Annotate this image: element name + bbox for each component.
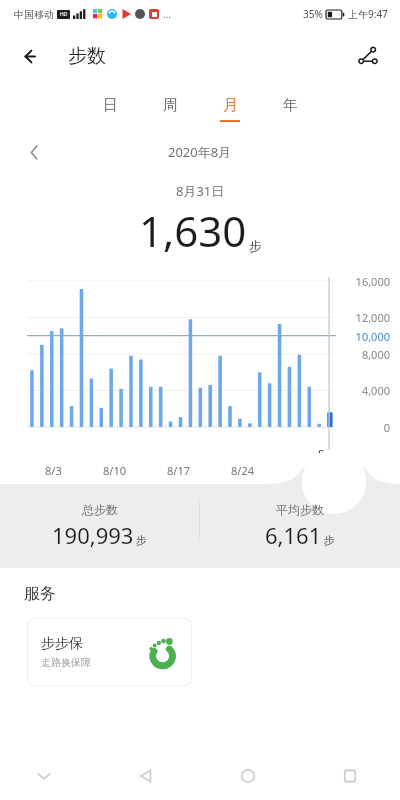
staticText: 步 [249, 238, 262, 254]
staticText: 走路换保障 [41, 656, 91, 669]
staticText: 服务 [24, 584, 56, 604]
staticText: 10,000 [0, 329, 390, 344]
button[interactable]: 总步数 [0, 502, 199, 550]
staticText: 日 [103, 96, 118, 115]
button[interactable]: 步步保 [27, 618, 192, 686]
staticText: 190,993 [52, 520, 134, 550]
staticText: 步数 [68, 44, 106, 68]
staticText: 月 [223, 96, 238, 115]
staticText: 步步保 [41, 635, 83, 653]
button[interactable]: 日 [96, 92, 124, 126]
staticText: 8/10 [103, 463, 126, 478]
staticText: 步 [136, 533, 147, 547]
staticText: 6,161 [265, 520, 322, 550]
staticText: 4,000 [0, 383, 390, 398]
button[interactable]: Home [226, 754, 270, 798]
button[interactable]: Back [10, 34, 54, 78]
staticText: 中国移动 [14, 8, 54, 21]
staticText: 8/3 [45, 463, 62, 478]
button[interactable]: Recents [328, 754, 372, 798]
staticText: 8/17 [167, 463, 190, 478]
button[interactable]: Share [346, 34, 390, 78]
staticText: 8/24 [231, 463, 254, 478]
button[interactable]: 年 [276, 92, 304, 126]
staticText: 8月31日 [176, 182, 225, 200]
staticText: 0 [0, 420, 390, 435]
staticText: 总步数 [82, 502, 118, 517]
staticText: 年 [283, 96, 298, 115]
staticText: 12,000 [0, 310, 390, 325]
staticText: 16,000 [0, 274, 390, 289]
button[interactable]: 周 [156, 92, 184, 126]
staticText: 平均步数 [276, 502, 324, 517]
button[interactable]: Back [124, 754, 168, 798]
button[interactable]: 月 [216, 92, 244, 126]
button[interactable]: Hide keyboard [22, 754, 66, 798]
staticText: 1,630 [139, 202, 247, 259]
button[interactable]: 平均步数 [200, 502, 400, 550]
staticText: 步 [324, 533, 335, 547]
staticText: … [163, 7, 171, 21]
staticText: 周 [163, 96, 178, 115]
staticText: 35% [303, 7, 323, 21]
staticText: 2020年8月 [168, 143, 232, 161]
staticText: 上午9:47 [348, 7, 388, 21]
staticText: HD [60, 11, 68, 18]
staticText: 8,000 [0, 347, 390, 362]
button[interactable]: Previous month [18, 136, 50, 168]
staticText: 8/31 [318, 446, 342, 461]
